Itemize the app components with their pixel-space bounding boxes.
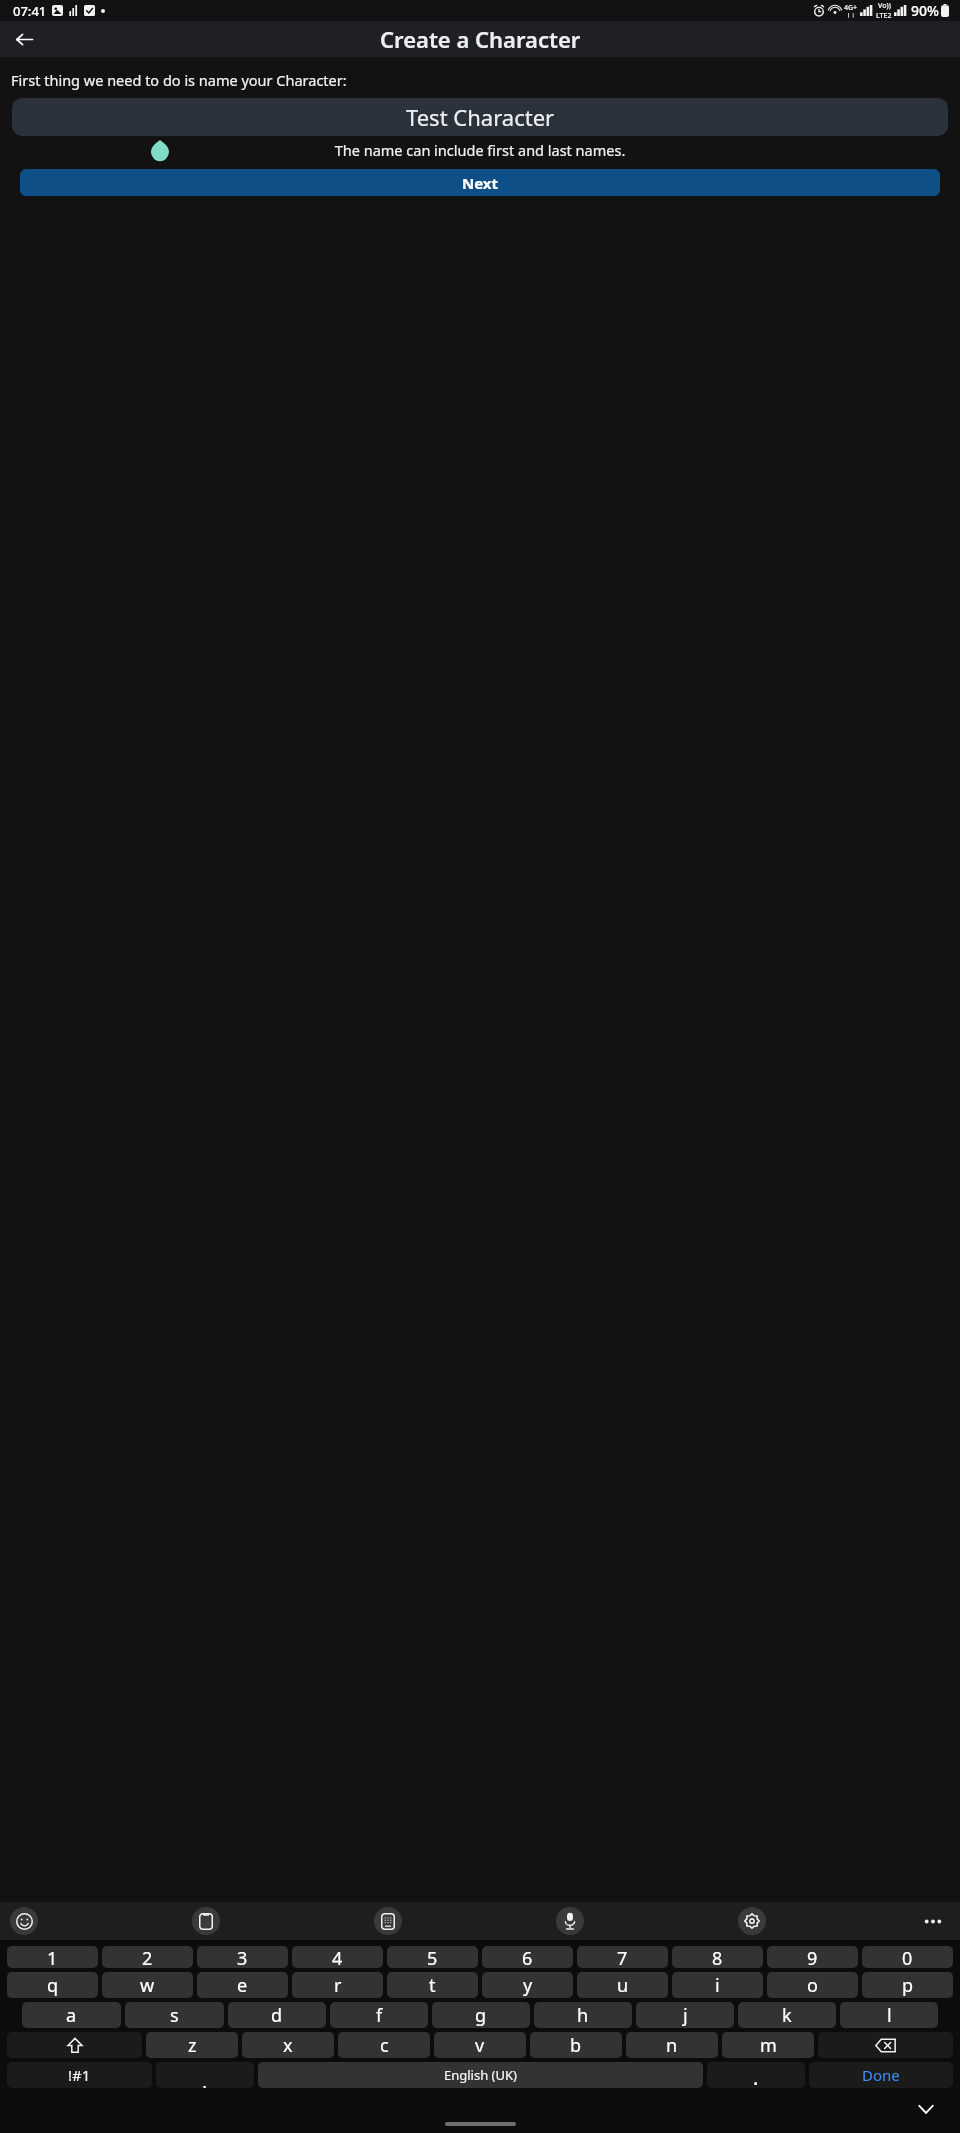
button[interactable]: w [102, 1972, 193, 1998]
staticText: i [715, 1973, 720, 1998]
button[interactable]: 2 [102, 1946, 193, 1968]
staticText: 5 [427, 1946, 438, 1968]
staticText: Done [862, 2065, 900, 2085]
staticText: u [617, 1973, 629, 1998]
staticText: Test Character [406, 102, 555, 132]
button[interactable]: m [722, 2032, 814, 2058]
button[interactable]: Test Character [12, 98, 948, 136]
staticText: The name can include first and last name… [0, 140, 960, 160]
button[interactable]: 6 [482, 1946, 573, 1968]
button[interactable]: 7 [577, 1946, 668, 1968]
button[interactable]: More options [920, 1908, 946, 1934]
button[interactable]: Comma [156, 2062, 254, 2088]
button[interactable]: Period [707, 2062, 805, 2088]
staticText: y [523, 1973, 533, 1998]
staticText: !#1 [68, 2065, 91, 2085]
staticText: k [782, 2003, 792, 2028]
button[interactable]: Voice input [556, 1907, 584, 1935]
button[interactable]: Clipboard [192, 1907, 220, 1935]
button[interactable]: Backspace [818, 2032, 953, 2058]
button[interactable]: !#1 [7, 2062, 152, 2088]
button[interactable]: 0 [862, 1946, 953, 1968]
staticText: 90% [911, 1, 939, 20]
staticText: 07:41 [13, 2, 47, 20]
staticText: 4 [332, 1946, 343, 1968]
staticText: English (UK) [444, 2066, 517, 2084]
button[interactable]: r [292, 1972, 383, 1998]
button[interactable]: Next [20, 169, 940, 196]
staticText: h [577, 2003, 589, 2028]
staticText: s [170, 2003, 179, 2028]
button[interactable]: Shift [7, 2032, 142, 2058]
staticText: 3 [237, 1946, 248, 1968]
staticText: First thing we need to do is name your C… [11, 70, 347, 90]
button[interactable]: Hide keyboard [914, 2097, 938, 2121]
staticText: g [475, 2003, 487, 2028]
staticText: LTE2 [876, 11, 892, 21]
button[interactable]: h [534, 2002, 632, 2028]
button[interactable]: j [636, 2002, 734, 2028]
staticText: 1 [47, 1946, 58, 1968]
button[interactable]: b [530, 2032, 622, 2058]
button[interactable]: Done [809, 2062, 953, 2088]
staticText: o [807, 1973, 818, 1998]
button[interactable]: y [482, 1972, 573, 1998]
button[interactable]: 8 [672, 1946, 763, 1968]
staticText: p [902, 1973, 914, 1998]
staticText: c [380, 2033, 389, 2058]
staticText: j [683, 2003, 688, 2028]
button[interactable]: Settings [738, 1907, 766, 1935]
staticText: . [753, 2064, 759, 2088]
button[interactable]: n [626, 2032, 718, 2058]
button[interactable]: 1 [7, 1946, 98, 1968]
button[interactable]: t [387, 1972, 478, 1998]
button[interactable]: Emoji [10, 1907, 38, 1935]
button[interactable]: o [767, 1972, 858, 1998]
button[interactable]: g [432, 2002, 530, 2028]
button[interactable]: q [7, 1972, 98, 1998]
staticText: b [570, 2033, 582, 2058]
button[interactable]: p [862, 1972, 953, 1998]
button[interactable]: Back [6, 21, 42, 57]
staticText: z [188, 2033, 197, 2058]
staticText: r [334, 1973, 342, 1998]
button[interactable]: k [738, 2002, 836, 2028]
button[interactable]: u [577, 1972, 668, 1998]
staticText: 4G+ [844, 3, 858, 13]
button[interactable]: c [338, 2032, 430, 2058]
staticText: 8 [712, 1946, 723, 1968]
staticText: x [283, 2033, 293, 2058]
button[interactable]: i [672, 1972, 763, 1998]
staticText: , [202, 2067, 208, 2088]
staticText: 9 [807, 1946, 818, 1968]
button[interactable]: 5 [387, 1946, 478, 1968]
button[interactable]: l [840, 2002, 938, 2028]
staticText: Vo)) [878, 1, 891, 11]
staticText: a [66, 2003, 77, 2028]
button[interactable]: s [125, 2002, 224, 2028]
staticText: w [140, 1973, 155, 1998]
staticText: d [271, 2003, 283, 2028]
staticText: 2 [142, 1946, 153, 1968]
staticText: 7 [617, 1946, 628, 1968]
staticText: q [47, 1973, 59, 1998]
button[interactable]: e [197, 1972, 288, 1998]
staticText: f [376, 2003, 383, 2028]
staticText: m [760, 2033, 777, 2058]
button[interactable]: d [228, 2002, 326, 2028]
button[interactable]: Stickers [374, 1907, 402, 1935]
button[interactable]: 9 [767, 1946, 858, 1968]
staticText: l [887, 2003, 892, 2028]
button[interactable]: z [146, 2032, 238, 2058]
button[interactable]: 3 [197, 1946, 288, 1968]
button[interactable]: 4 [292, 1946, 383, 1968]
staticText: t [429, 1973, 436, 1998]
button[interactable]: v [434, 2032, 526, 2058]
staticText: Next [462, 173, 499, 193]
staticText: v [475, 2033, 485, 2058]
button[interactable]: English (UK) [258, 2062, 703, 2088]
staticText: 6 [522, 1946, 533, 1968]
button[interactable]: f [330, 2002, 428, 2028]
button[interactable]: a [22, 2002, 121, 2028]
button[interactable]: x [242, 2032, 334, 2058]
